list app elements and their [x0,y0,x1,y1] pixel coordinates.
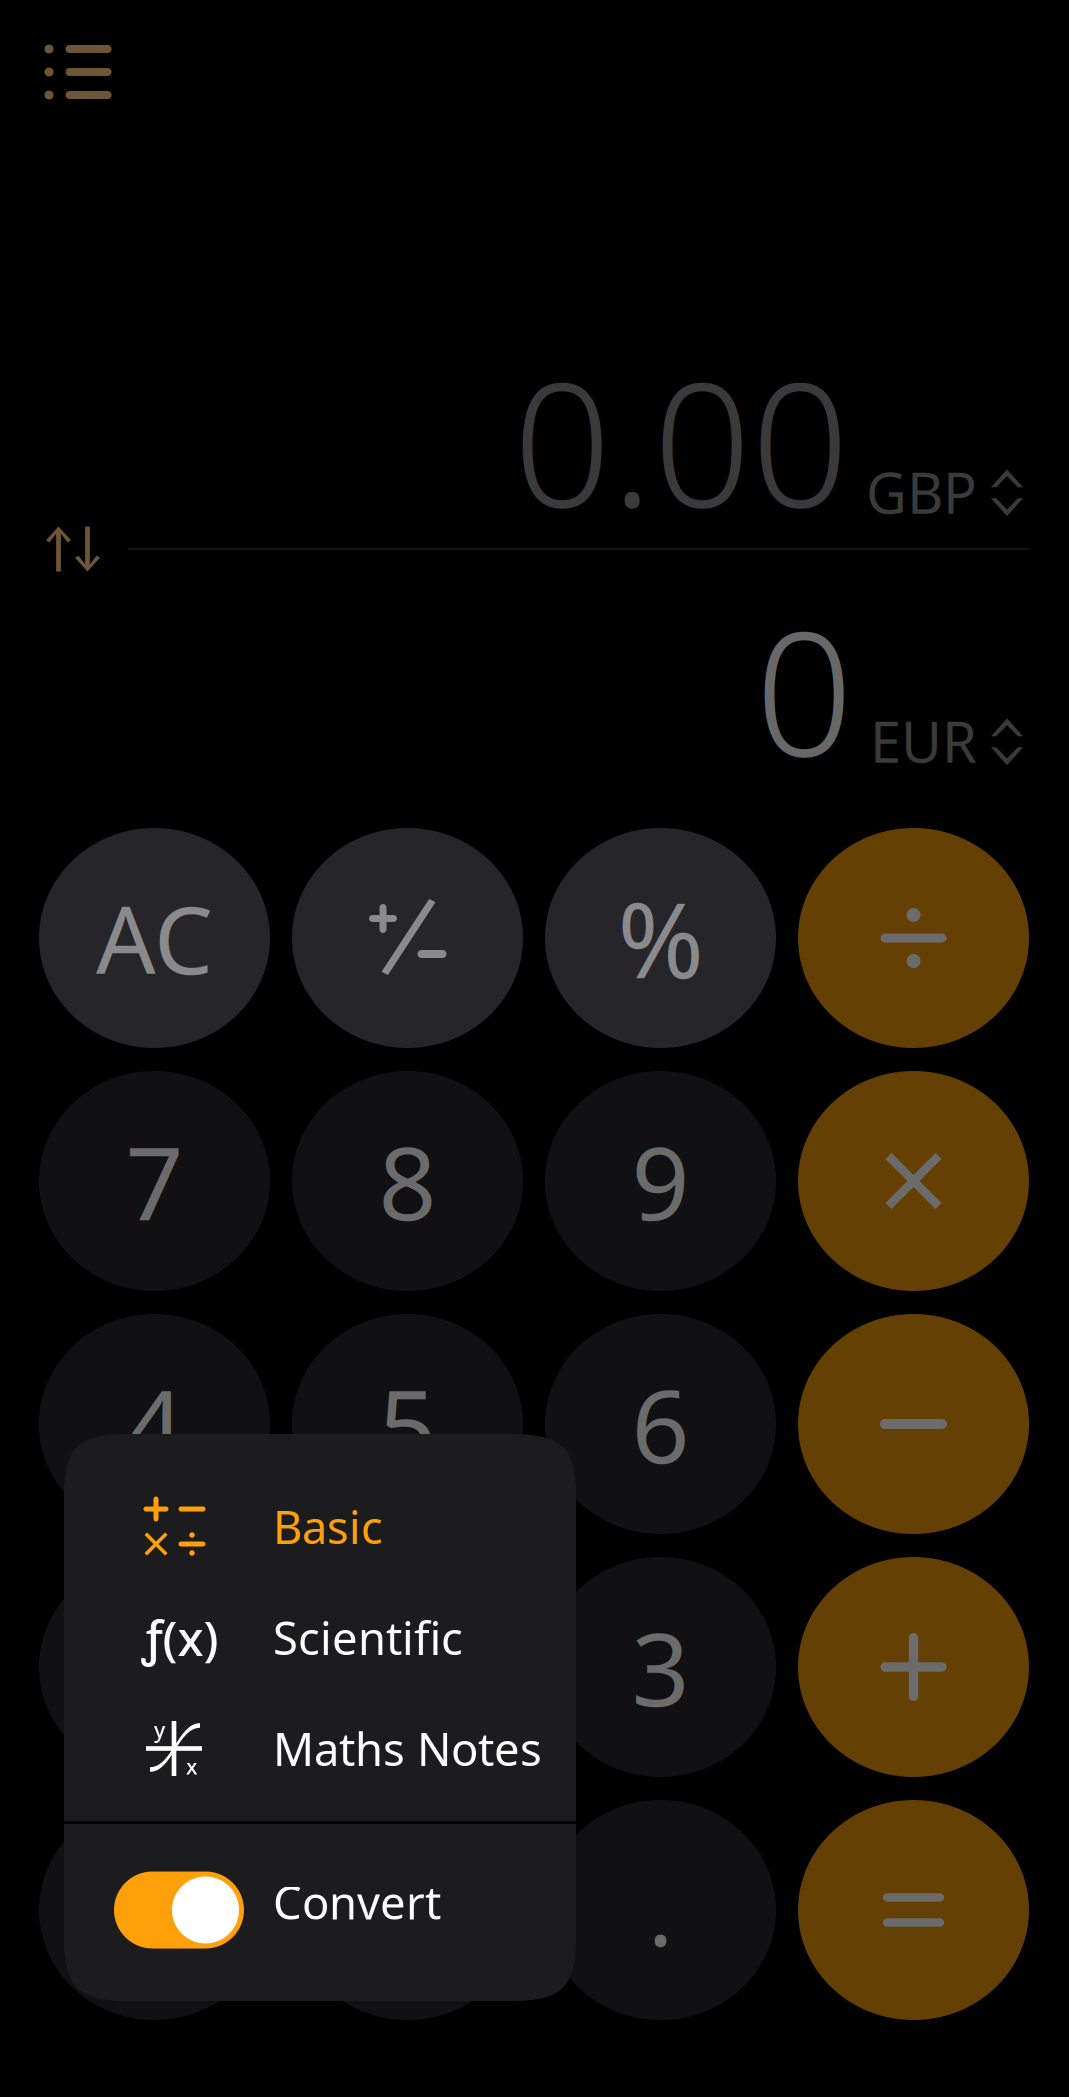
button[interactable]: Divide [798,828,1029,1048]
staticText: 0 [125,1843,183,1977]
staticText: 5 [378,1357,436,1491]
staticText: Convert [273,1872,441,1932]
staticText: 8 [378,1114,436,1248]
button[interactable]: . [545,1800,776,2020]
staticText: 4 [125,1357,183,1491]
button[interactable]: ƒ(x) [64,1582,576,1693]
staticText: 00 [349,1843,465,1977]
button[interactable]: 4 [39,1314,270,1534]
button[interactable]: 7 [39,1071,270,1291]
button[interactable]: 0 [39,1800,270,2020]
staticText: 3 [631,1600,689,1734]
staticText: 1 [125,1600,183,1734]
staticText: % [617,869,703,1007]
staticText: ƒ(x) [141,1606,218,1669]
button[interactable]: % [545,828,776,1048]
button[interactable]: 5 [292,1314,523,1534]
staticText: x [186,1752,198,1780]
button[interactable]: Convert [64,1824,576,2004]
staticText: 2 [378,1600,436,1734]
staticText: 0 [755,575,853,803]
staticText: AC [96,876,213,1000]
button[interactable]: Plus [798,1557,1029,1777]
staticText: . [648,1848,673,1972]
button[interactable]: Plus minus [292,828,523,1048]
button[interactable]: 1 [39,1557,270,1777]
button[interactable]: 6 [545,1314,776,1534]
button[interactable]: 8 [292,1071,523,1291]
staticText: y [154,1715,165,1744]
staticText: 0.00 [513,326,849,554]
button[interactable]: y [64,1693,576,1804]
staticText: 6 [631,1357,689,1491]
staticText: Basic [273,1496,383,1557]
button[interactable]: 2 [292,1557,523,1777]
staticText: 7 [125,1114,183,1248]
button[interactable]: Multiply [798,1071,1029,1291]
button[interactable]: Basic [64,1471,576,1582]
button[interactable]: 9 [545,1071,776,1291]
staticText: Scientific [273,1607,463,1668]
staticText: 9 [631,1114,689,1248]
staticText: Maths Notes [273,1718,542,1779]
button[interactable]: History [18,17,138,127]
button[interactable]: Minus [798,1314,1029,1534]
button[interactable]: Equals [798,1800,1029,2020]
button[interactable]: 00 [292,1800,523,2020]
staticText: GBP [866,455,977,529]
button[interactable]: 3 [545,1557,776,1777]
staticText: EUR [870,704,977,778]
button[interactable]: AC [39,828,270,1048]
